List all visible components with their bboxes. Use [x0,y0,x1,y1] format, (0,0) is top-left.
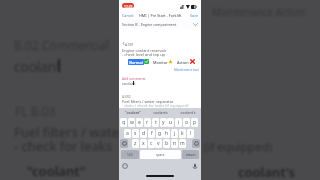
button[interactable]: y [160,118,167,127]
staticText: q [122,119,126,126]
button[interactable]: i [175,118,182,127]
staticText: z [134,140,137,147]
button[interactable]: Emoji keyboard [122,163,128,169]
button[interactable]: h [163,129,170,138]
staticText: Monitor [153,60,168,65]
staticText: i [178,119,180,126]
button[interactable]: j [171,129,178,138]
button[interactable]: f [148,129,155,138]
button[interactable]: c [148,139,155,148]
staticText: n [173,140,177,147]
staticText: Section B - Engine compartment [122,22,177,27]
staticText: Action [177,60,189,65]
button[interactable]: Normal [128,59,149,65]
button[interactable]: Action [177,59,195,65]
staticText: A.001 [125,42,134,46]
staticText: coolants [153,110,168,115]
button[interactable]: n [171,139,178,148]
staticText: d [142,130,146,137]
button[interactable]: l [187,129,194,138]
staticText: - check level and top up [122,52,165,57]
button[interactable]: coolant's [174,108,201,117]
button[interactable]: Shift [120,139,128,148]
staticText: Save [190,13,199,18]
staticText: A.002 [122,94,131,98]
staticText: Fuel filters / water [14,123,125,141]
staticText: Cancel [122,13,134,18]
staticText: s [134,130,137,137]
button[interactable]: r [144,118,151,127]
button[interactable]: b [163,139,170,148]
staticText: f [151,130,153,137]
staticText: coolant [122,81,136,86]
staticText: coolant's [180,110,196,115]
staticText: m [180,140,185,147]
button[interactable]: Maintenance tool [174,68,199,72]
button[interactable]: e [136,118,143,127]
staticText: r [146,119,149,126]
button[interactable]: u [167,118,174,127]
staticText: Engine coolant reservoir [122,48,167,53]
button[interactable]: o [183,118,190,127]
button[interactable]: q [120,118,127,127]
staticText: B.02 Commercial [14,37,110,53]
button[interactable]: Save [190,13,199,18]
button[interactable]: Monitor [153,59,174,65]
button[interactable]: "coolant" [119,108,147,117]
staticText: 12:23 [124,4,133,8]
button[interactable]: s [132,129,139,138]
staticText: e [138,119,141,126]
staticText: "coolant" [27,162,86,180]
staticText: 123 [127,153,133,157]
staticText: j [174,130,176,137]
button[interactable]: Section B - Engine compartment [119,19,201,29]
button[interactable]: w [128,118,135,127]
button[interactable]: return [182,150,199,159]
button[interactable]: m [179,139,186,148]
button[interactable]: z [132,139,139,148]
staticText: Fuel filters / water separator [122,99,174,104]
staticText: FL B.03 [15,103,56,119]
button[interactable]: Dictation [192,163,198,169]
staticText: Maintenance tool [174,68,199,72]
button[interactable]: p [191,118,198,127]
staticText: Add comments [122,76,146,80]
staticText: return [186,153,196,157]
staticText: coolant's [238,163,295,180]
staticText: v [157,140,160,147]
button[interactable]: 123 [121,150,139,159]
staticText: coolant [14,58,62,76]
staticText: a [126,130,129,137]
button[interactable]: a [124,129,131,138]
staticText: x [142,140,145,147]
staticText: h [165,130,169,137]
staticText: t [155,119,157,126]
button[interactable]: v [155,139,162,148]
button[interactable]: k [179,129,186,138]
staticText: HMI | Pre Start - Forklift [139,13,182,18]
staticText: w [130,119,134,126]
staticText: l [190,130,192,137]
staticText: "coolant" [125,110,141,115]
staticText: space [156,153,165,157]
staticText: c [150,140,153,147]
staticText: Normal [129,60,143,65]
staticText: - check for leaks [14,137,112,155]
button[interactable]: x [140,139,147,148]
button[interactable]: Backspace [192,139,200,148]
staticText: p [193,119,197,126]
staticText: - drain / check for leaks (if equipped) [122,103,189,108]
button[interactable]: t [152,118,159,127]
button[interactable]: Cancel [122,13,134,18]
staticText: o [185,119,189,126]
button[interactable]: space [140,150,181,159]
button[interactable]: Screen recording [122,3,134,8]
staticText: (if equipped) [204,139,273,155]
button[interactable]: g [156,129,163,138]
staticText: u [169,119,173,126]
button[interactable]: d [140,129,147,138]
button[interactable]: coolants [147,108,174,117]
staticText: y [162,119,165,126]
staticText: g [158,130,162,137]
